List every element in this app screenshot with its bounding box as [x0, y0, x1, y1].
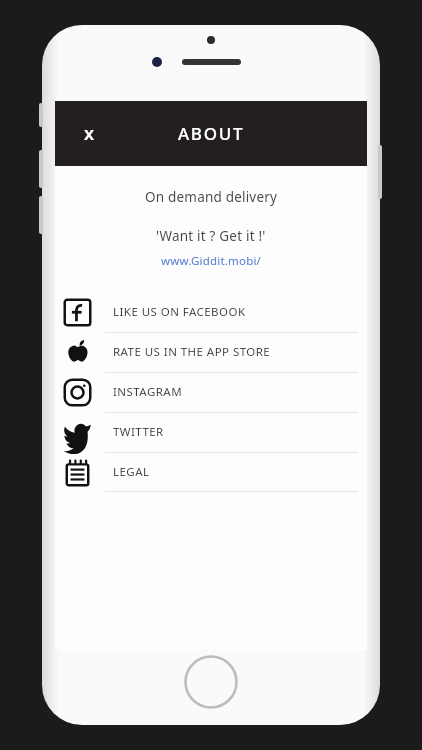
button[interactable]: LIKE US ON FACEBOOK [55, 292, 367, 332]
staticText: LIKE US ON FACEBOOK [113, 304, 246, 320]
staticText: www.Giddit.mobi/ [161, 253, 262, 269]
button[interactable]: Close [69, 114, 109, 154]
staticText: LEGAL [113, 464, 150, 480]
button[interactable]: www.Giddit.mobi/ [161, 253, 262, 269]
staticText: X [84, 124, 95, 144]
button[interactable]: RATE US IN THE APP STORE [55, 332, 367, 372]
staticText: TWITTER [113, 424, 164, 440]
staticText: On demand delivery [145, 188, 278, 206]
button[interactable]: INSTAGRAM [55, 372, 367, 412]
staticText: RATE US IN THE APP STORE [113, 344, 271, 360]
staticText: 'Want it ? Get it !' [156, 227, 266, 245]
staticText: INSTAGRAM [113, 384, 183, 400]
button[interactable]: TWITTER [55, 412, 367, 452]
button[interactable]: LEGAL [55, 452, 367, 492]
staticText: ABOUT [178, 122, 245, 145]
